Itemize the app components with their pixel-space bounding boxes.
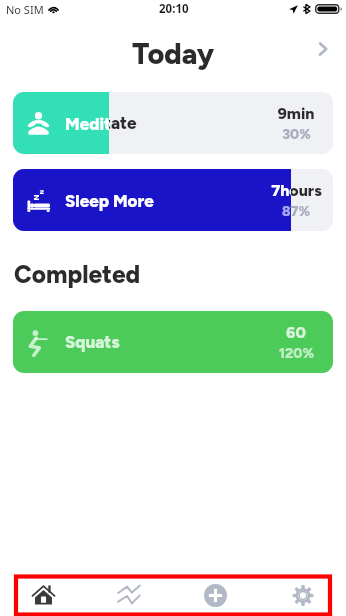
button[interactable]: Statistics: [86, 575, 172, 615]
staticText: Meditate: [65, 114, 109, 134]
button[interactable]: Next: [306, 32, 340, 66]
staticText: 87%: [282, 203, 291, 220]
staticText: Today: [132, 36, 215, 71]
staticText: 120%: [279, 345, 314, 362]
staticText: Sleep More: [65, 191, 154, 211]
staticText: 87%: [282, 203, 310, 220]
staticText: Sleep More: [65, 190, 154, 210]
staticText: 7hours: [271, 181, 291, 200]
staticText: 9min: [277, 104, 315, 123]
button[interactable]: Home: [0, 575, 86, 615]
button[interactable]: Add: [172, 575, 259, 615]
staticText: 20:10: [159, 1, 189, 17]
staticText: Squats: [65, 332, 120, 352]
staticText: 60: [286, 323, 306, 342]
staticText: 30%: [282, 126, 311, 143]
button[interactable]: Settings: [259, 575, 346, 615]
staticText: No SIM: [6, 2, 44, 17]
button[interactable]: Sleep More: [13, 169, 333, 231]
staticText: 7hours: [271, 181, 322, 200]
button[interactable]: Squats: [13, 311, 333, 373]
staticText: Meditate: [65, 113, 137, 133]
staticText: Completed: [14, 260, 141, 289]
button[interactable]: Meditate: [13, 92, 333, 154]
